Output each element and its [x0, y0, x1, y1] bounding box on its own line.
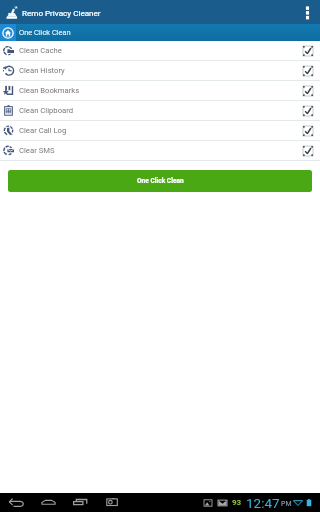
button[interactable]: Clean Clipboard	[0, 101, 320, 121]
staticText: PM	[281, 500, 292, 508]
staticText: One Click Clean	[19, 28, 71, 37]
button[interactable]: Back	[7, 493, 26, 512]
button[interactable]: Home	[39, 493, 58, 512]
button[interactable]: Clean Cache	[0, 41, 320, 61]
staticText: Clean Bookmarks	[19, 86, 80, 95]
staticText: Clean Cache	[19, 46, 62, 55]
staticText: 93	[232, 498, 242, 507]
staticText: Remo Privacy Cleaner	[22, 8, 101, 17]
button[interactable]: Screenshot	[103, 493, 122, 512]
button[interactable]: Clear Call Log	[0, 121, 320, 141]
button[interactable]: Clean History	[0, 61, 320, 81]
staticText: Clear Call Log	[19, 126, 67, 135]
button[interactable]: Clean Bookmarks	[0, 81, 320, 101]
staticText: Clean History	[19, 66, 65, 75]
button[interactable]: One Click Clean	[8, 170, 312, 192]
button[interactable]: Clear SMS	[0, 141, 320, 161]
button[interactable]: More options	[298, 0, 320, 24]
staticText: Clear SMS	[19, 146, 55, 155]
staticText: One Click Clean	[137, 177, 184, 185]
staticText: Clean Clipboard	[19, 106, 74, 115]
button[interactable]: One Click Clean	[0, 24, 320, 41]
button[interactable]: Recent apps	[71, 493, 90, 512]
staticText: 12:47	[246, 495, 280, 511]
